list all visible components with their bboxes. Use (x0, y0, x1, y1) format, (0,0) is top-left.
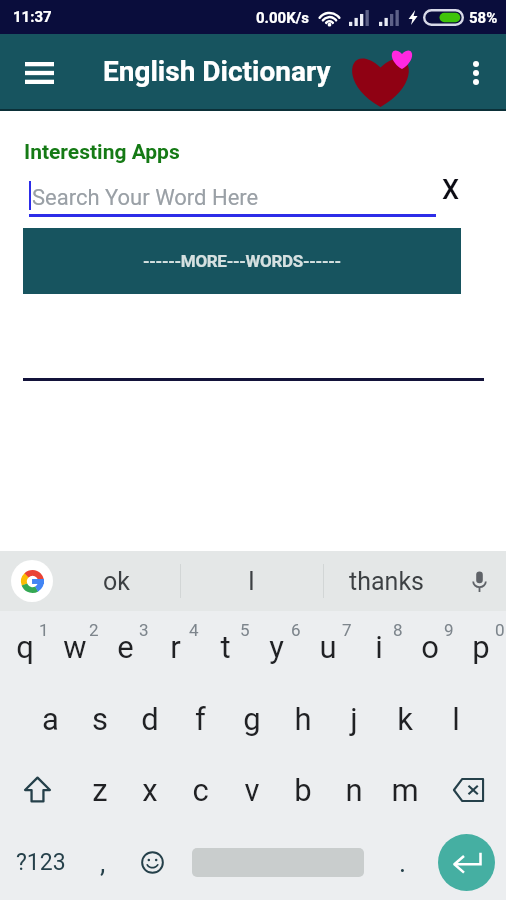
button[interactable]: r (150, 611, 200, 683)
staticText: ?123 (16, 849, 66, 876)
staticText: r (170, 629, 181, 665)
staticText: a (42, 701, 59, 737)
staticText: 7 (342, 620, 352, 640)
staticText: 1 (39, 620, 49, 640)
staticText: English Dictionary (103, 55, 331, 88)
staticText: m (391, 772, 419, 808)
button[interactable]: I (189, 551, 313, 611)
button[interactable]: ?123 (6, 825, 76, 900)
staticText: X (442, 174, 460, 206)
button[interactable]: e (100, 611, 150, 683)
staticText: f (195, 701, 206, 737)
staticText: 0 (495, 620, 505, 640)
button[interactable]: ------MORE---WORDS------ (23, 228, 461, 294)
button[interactable]: p (455, 611, 506, 683)
staticText: b (294, 772, 312, 808)
staticText: q (16, 629, 34, 665)
staticText: s (92, 701, 108, 737)
button[interactable]: n (328, 754, 379, 825)
staticText: o (421, 629, 439, 665)
staticText: u (319, 629, 337, 665)
staticText: t (220, 629, 231, 665)
button[interactable]: h (277, 683, 328, 754)
staticText: 5 (240, 620, 250, 640)
button[interactable]: Space (180, 825, 376, 900)
button[interactable]: t (200, 611, 251, 683)
staticText: 2 (89, 620, 99, 640)
staticText: h (294, 701, 312, 737)
button[interactable]: c (175, 754, 226, 825)
staticText: thanks (349, 567, 424, 596)
button[interactable]: s (75, 683, 125, 754)
button[interactable]: g (226, 683, 277, 754)
staticText: j (350, 701, 358, 737)
button[interactable]: j (328, 683, 379, 754)
staticText: 11:37 (13, 8, 52, 26)
staticText: ------MORE---WORDS------ (143, 251, 341, 271)
staticText: k (397, 701, 413, 737)
staticText: , (100, 847, 106, 879)
staticText: x (142, 772, 158, 808)
button[interactable]: f (175, 683, 226, 754)
staticText: n (345, 772, 363, 808)
staticText: 3 (139, 620, 149, 640)
staticText: v (244, 772, 260, 808)
staticText: 0.00K/s (256, 9, 310, 27)
button[interactable]: y (251, 611, 302, 683)
button[interactable]: . (378, 825, 428, 900)
button[interactable]: i (353, 611, 404, 683)
staticText: . (399, 847, 407, 879)
button[interactable]: m (379, 754, 430, 825)
button[interactable]: Search Your Word Here (29, 181, 436, 217)
button[interactable]: Shift (0, 754, 75, 825)
staticText: g (243, 701, 261, 737)
button[interactable]: thanks (324, 551, 448, 611)
staticText: 9 (444, 620, 454, 640)
button[interactable]: Emoji (127, 825, 177, 900)
button[interactable]: x (125, 754, 175, 825)
button[interactable]: w (50, 611, 100, 683)
staticText: i (375, 629, 383, 665)
button[interactable]: v (226, 754, 277, 825)
staticText: 58% (469, 9, 498, 27)
button[interactable]: More options (453, 50, 499, 96)
staticText: w (63, 629, 87, 665)
button[interactable]: X (428, 167, 474, 213)
button[interactable]: b (277, 754, 328, 825)
button[interactable]: , (78, 825, 128, 900)
button[interactable]: q (0, 611, 50, 683)
button[interactable]: Enter (438, 834, 495, 891)
staticText: Search Your Word Here (32, 185, 259, 211)
staticText: z (92, 772, 108, 808)
button[interactable]: Voice input (462, 564, 496, 598)
staticText: I (248, 567, 255, 596)
button[interactable]: d (125, 683, 175, 754)
button[interactable]: l (430, 683, 481, 754)
staticText: e (117, 629, 134, 665)
staticText: 4 (189, 620, 199, 640)
button[interactable]: Open navigation menu (10, 44, 68, 102)
button[interactable]: k (379, 683, 430, 754)
staticText: ok (103, 567, 130, 596)
button[interactable]: u (302, 611, 353, 683)
button[interactable]: Favourites (345, 45, 417, 107)
staticText: 6 (291, 620, 301, 640)
staticText: c (192, 772, 209, 808)
button[interactable]: ok (54, 551, 178, 611)
button[interactable]: z (75, 754, 125, 825)
staticText: 8 (393, 620, 403, 640)
staticText: l (452, 701, 460, 737)
staticText: y (269, 629, 284, 665)
button[interactable]: Backspace (430, 754, 506, 825)
staticText: p (472, 629, 490, 665)
button[interactable]: o (404, 611, 455, 683)
staticText: d (141, 701, 159, 737)
button[interactable]: a (25, 683, 75, 754)
button[interactable]: Google (11, 560, 53, 602)
staticText: Interesting Apps (24, 140, 180, 165)
